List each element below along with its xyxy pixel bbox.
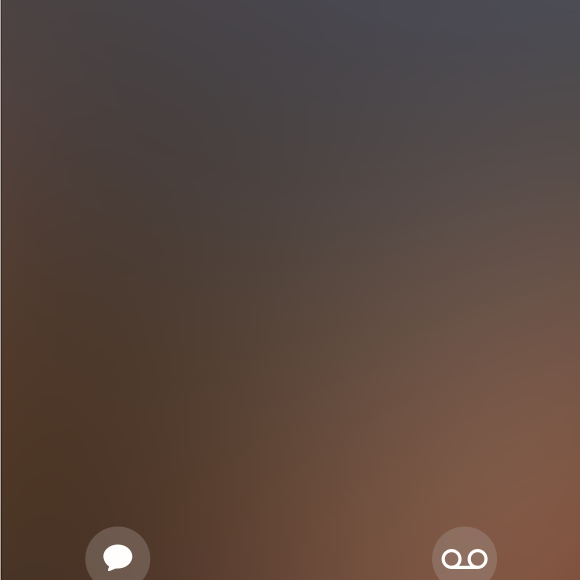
button[interactable]: Message — [85, 526, 150, 580]
button[interactable]: Voicemail — [432, 526, 497, 580]
